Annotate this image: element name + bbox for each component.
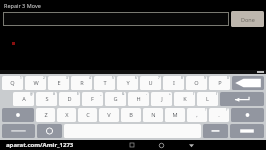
button[interactable]: 5 (94, 76, 115, 90)
staticText: M (172, 111, 178, 119)
button[interactable]: Symbols (2, 124, 35, 138)
staticText: J (161, 95, 163, 103)
staticText: @ (30, 92, 33, 96)
button[interactable]: Back (186, 140, 197, 150)
button[interactable]: V (99, 108, 119, 122)
button[interactable]: Done (231, 11, 264, 27)
staticText: C (86, 111, 90, 119)
button[interactable]: 7 (140, 76, 161, 90)
staticText: L (206, 95, 209, 103)
button[interactable]: - (128, 92, 149, 106)
staticText: T (103, 79, 107, 87)
button[interactable]: 8 (163, 76, 184, 90)
staticText: W (33, 79, 39, 87)
button[interactable]: Enter (220, 92, 264, 106)
staticText: P (218, 79, 222, 87)
button[interactable]: Enter key (230, 124, 264, 138)
staticText: ( (193, 92, 194, 96)
staticText: I (173, 79, 175, 87)
staticText: A (22, 95, 26, 103)
staticText: H (136, 95, 141, 103)
button[interactable]: 0 (209, 76, 230, 90)
staticText: 8 (181, 76, 183, 80)
staticText: _ (100, 92, 102, 96)
button[interactable]: 9 (186, 76, 207, 90)
button[interactable]: # (36, 92, 57, 106)
staticText: O (194, 79, 199, 87)
staticText: 2 (43, 76, 45, 80)
staticText: Q (10, 79, 15, 87)
staticText: 6 (135, 76, 137, 80)
button[interactable]: + (151, 92, 172, 106)
button[interactable]: ( (174, 92, 195, 106)
button[interactable]: Backspace (232, 76, 264, 90)
staticText: D (67, 95, 72, 103)
staticText: 5 (112, 76, 114, 80)
staticText: # (53, 92, 56, 96)
button[interactable]: Emoji (37, 124, 62, 138)
staticText: , (196, 111, 198, 119)
button[interactable]: Z (36, 108, 55, 122)
staticText: - (146, 92, 148, 96)
button[interactable]: Home (156, 140, 167, 150)
staticText: V (107, 111, 111, 119)
button[interactable]: _ (82, 92, 103, 106)
staticText: ! (205, 108, 206, 112)
button[interactable]: 3 (48, 76, 69, 90)
staticText: aparat.com/Amir_1273 (6, 141, 74, 149)
staticText: 7 (158, 76, 160, 80)
button[interactable]: 2 (25, 76, 46, 90)
button[interactable]: Period (203, 124, 228, 138)
staticText: X (65, 111, 69, 119)
staticText: F (91, 95, 94, 103)
staticText: Done (241, 16, 255, 23)
staticText: + (169, 92, 171, 96)
staticText: Repair 3 Move (4, 2, 41, 9)
staticText: 3 (66, 76, 68, 80)
button[interactable]: ! (187, 108, 207, 122)
staticText: B (129, 111, 133, 119)
staticText: 9 (204, 76, 206, 80)
button[interactable]: M (165, 108, 185, 122)
staticText: U (148, 79, 153, 87)
staticText: $ (77, 92, 79, 96)
staticText: Z (44, 111, 48, 119)
button[interactable] (3, 12, 229, 26)
button[interactable]: Shift (2, 108, 34, 122)
staticText: E (57, 79, 61, 87)
staticText: K (183, 95, 187, 103)
button[interactable]: 6 (117, 76, 138, 90)
button[interactable]: B (121, 108, 141, 122)
button[interactable]: & (105, 92, 126, 106)
staticText: . (218, 111, 220, 119)
staticText: Y (126, 79, 130, 87)
staticText: S (45, 95, 49, 103)
button[interactable]: ? (209, 108, 229, 122)
button[interactable]: 1 (2, 76, 23, 90)
button[interactable]: ) (197, 92, 218, 106)
staticText: 4 (89, 76, 91, 80)
staticText: ) (216, 92, 217, 96)
staticText: N (151, 111, 156, 119)
staticText: 1 (20, 76, 22, 80)
staticText: ? (226, 108, 228, 112)
staticText: G (113, 95, 118, 103)
staticText: R (80, 79, 84, 87)
button[interactable]: N (143, 108, 163, 122)
staticText: 0 (227, 76, 229, 80)
staticText: & (122, 92, 125, 96)
button[interactable]: 4 (71, 76, 92, 90)
button[interactable]: X (57, 108, 76, 122)
button[interactable]: @ (13, 92, 34, 106)
button[interactable]: C (78, 108, 97, 122)
button[interactable]: Recent apps (126, 140, 137, 150)
button[interactable]: Delete (231, 108, 264, 122)
button[interactable]: $ (59, 92, 80, 106)
